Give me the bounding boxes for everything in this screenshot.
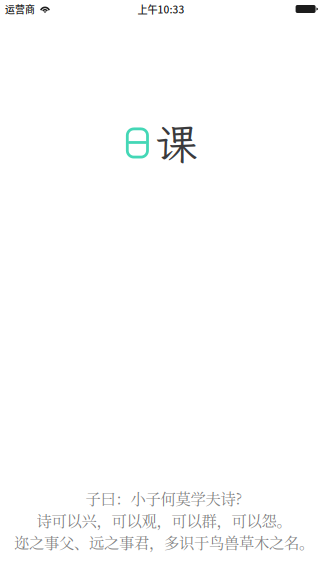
staticText: 子曰：小子何莫学夫诗? bbox=[85, 487, 242, 509]
staticText: 迩之事父、远之事君，多识于鸟兽草木之名。 bbox=[14, 531, 314, 553]
staticText: 诗可以兴，可以观，可以群，可以怨。 bbox=[36, 509, 291, 531]
staticText: 课 bbox=[154, 115, 197, 171]
staticText: 上午10:33 bbox=[137, 2, 184, 16]
staticText: 运营商 bbox=[5, 2, 35, 16]
